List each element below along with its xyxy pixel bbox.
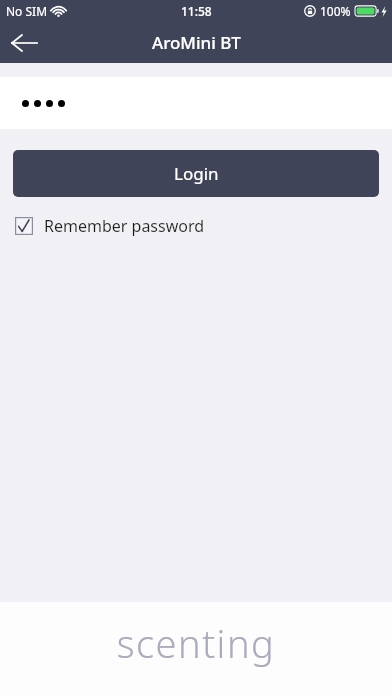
button[interactable]: Back (0, 22, 48, 63)
staticText: No SIM (6, 3, 48, 19)
staticText: 11:58 (181, 3, 212, 19)
button[interactable]: Login (13, 150, 379, 197)
staticText: scenting (0, 617, 392, 669)
staticText: Remember password (44, 215, 205, 237)
button[interactable] (0, 77, 392, 129)
staticText: AroMini BT (152, 31, 241, 54)
button[interactable]: Remember password (15, 209, 392, 243)
staticText: 100% (320, 3, 351, 19)
staticText: Login (174, 162, 219, 185)
